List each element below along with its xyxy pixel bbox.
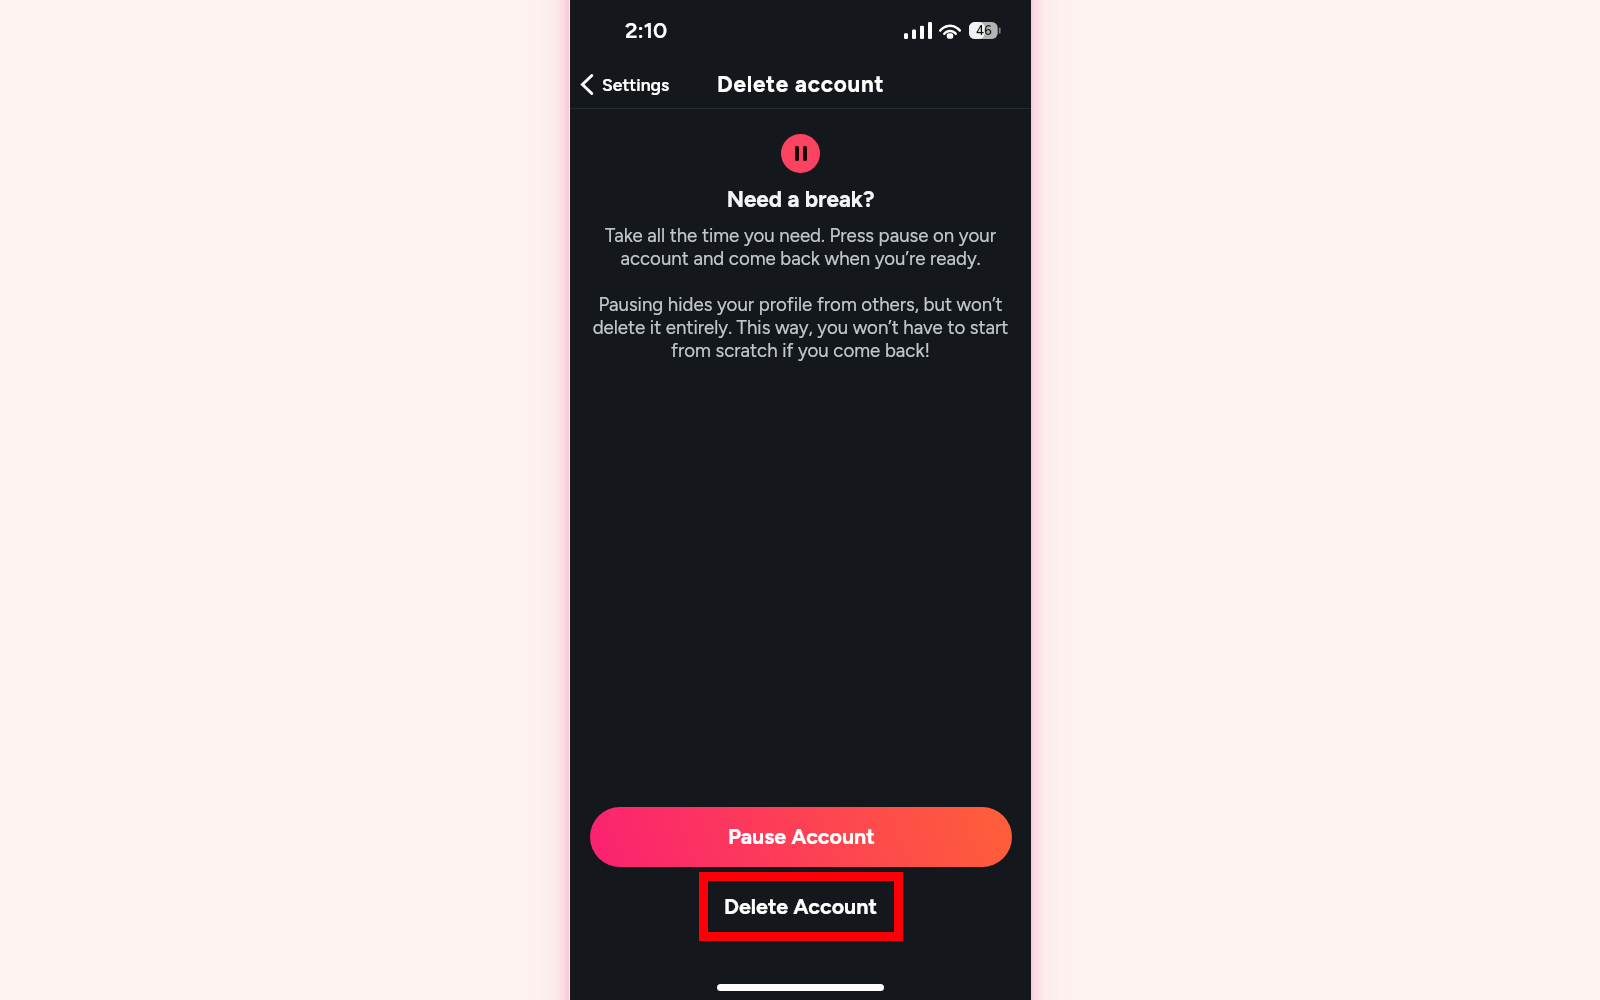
button[interactable]: Delete Account [708, 881, 894, 932]
staticText: Pause Account [728, 824, 875, 850]
staticText: 2:10 [625, 17, 668, 43]
staticText: Settings [602, 74, 670, 95]
staticText: Delete account [717, 71, 885, 98]
staticText: 46 [976, 23, 992, 39]
staticText: Delete Account [724, 894, 878, 920]
staticText: Need a break? [570, 186, 1031, 213]
button[interactable]: Back to Settings [570, 68, 680, 101]
staticText: Take all the time you need. Press pause … [592, 224, 1009, 270]
button[interactable]: Pause Account [590, 807, 1012, 867]
staticText: Pausing hides your profile from others, … [585, 293, 1016, 362]
